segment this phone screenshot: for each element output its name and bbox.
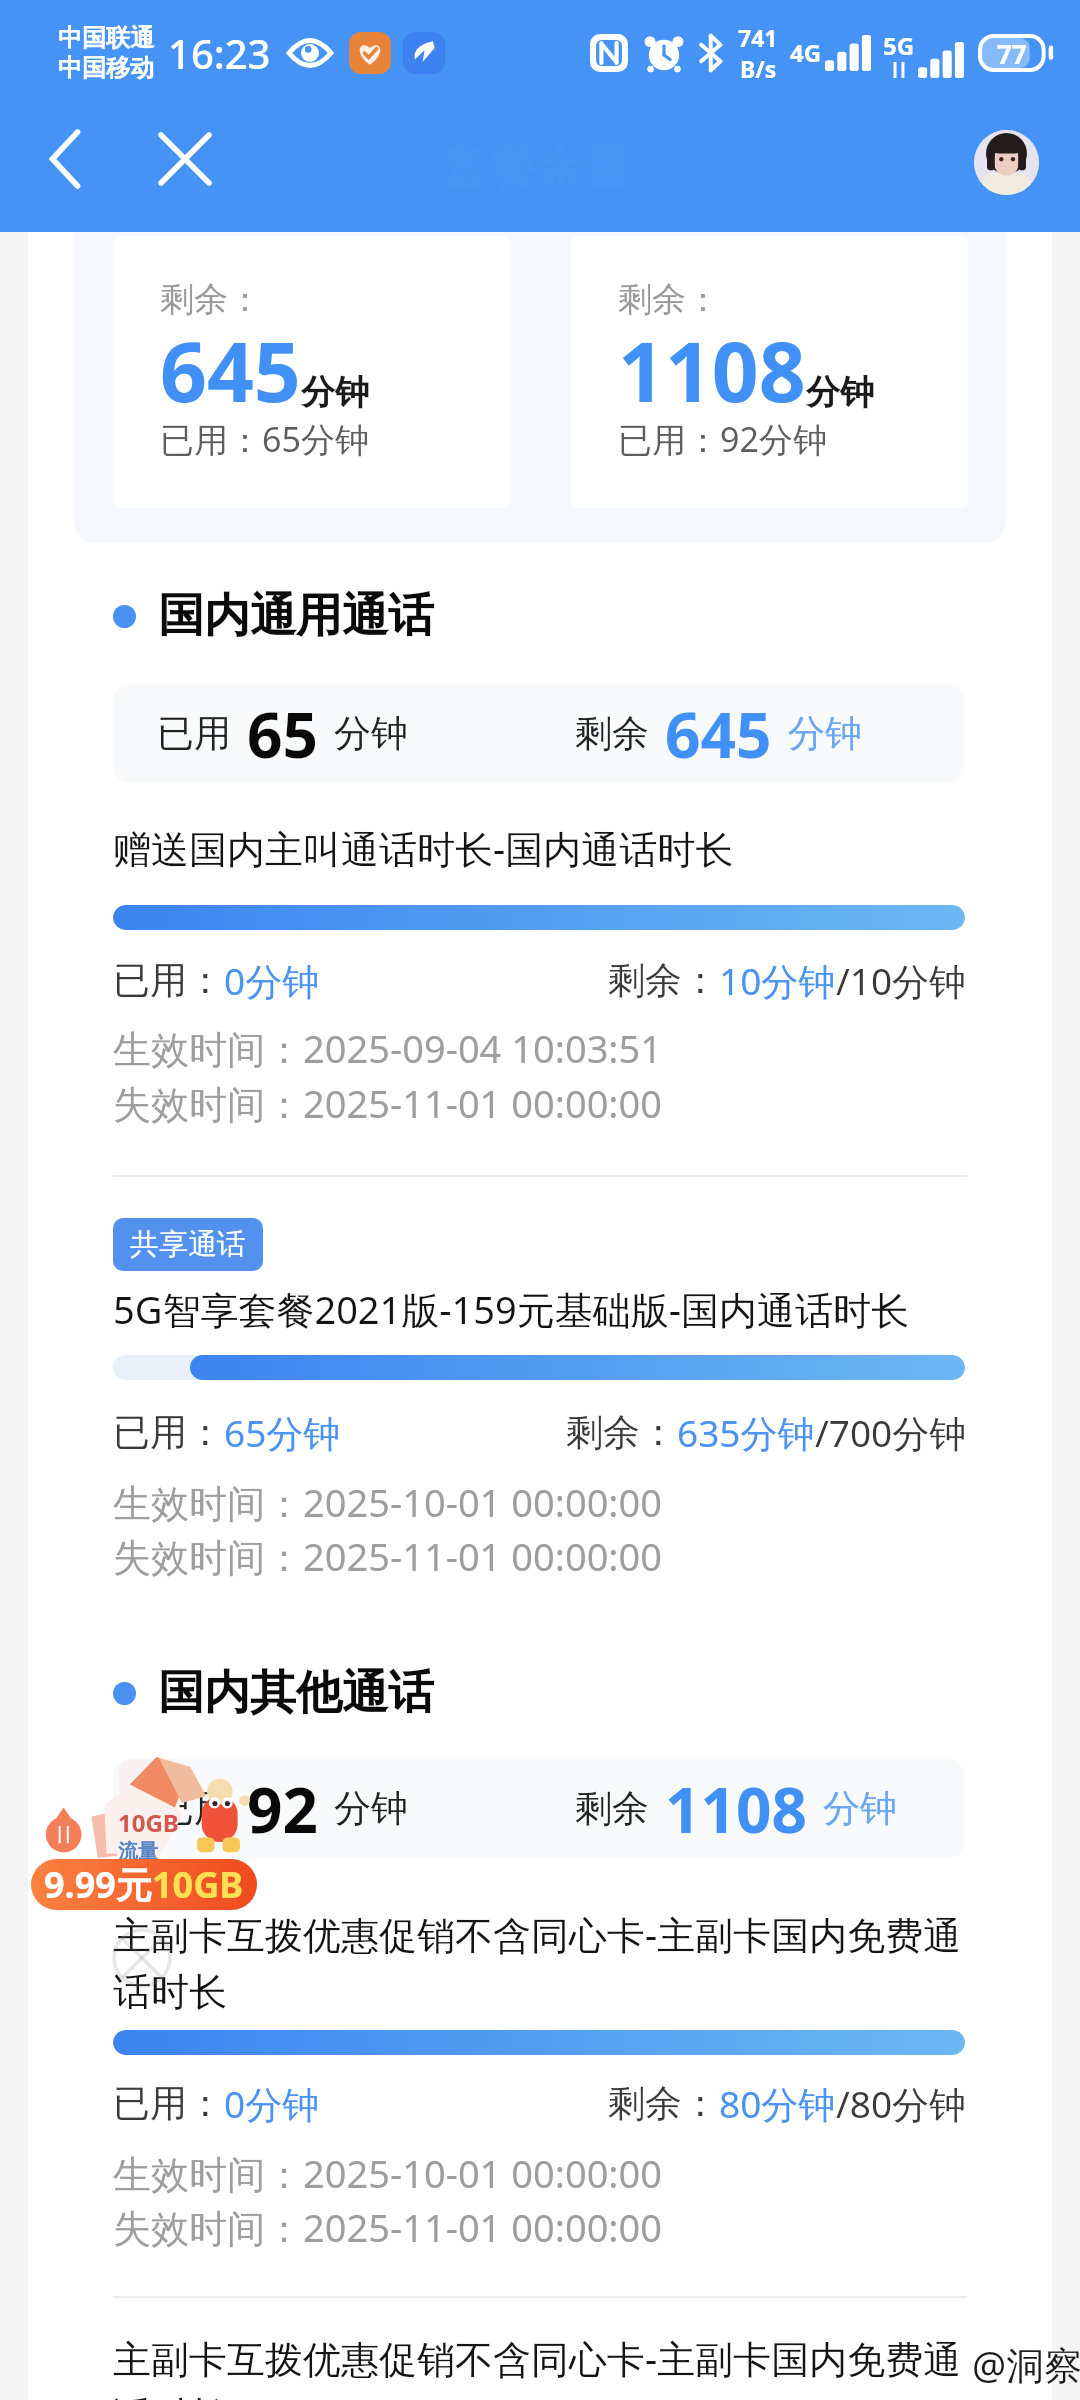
staticText: 中国联通 [58, 23, 154, 53]
staticText: 65分钟 [224, 1407, 341, 1458]
staticText: 生效时间：2025-10-01 00:00:00 [113, 2147, 663, 2199]
button[interactable]: 剩余： [113, 236, 510, 508]
button[interactable]: Profile [974, 130, 1039, 195]
staticText: 剩余 [575, 1785, 649, 1832]
staticText: 主副卡互拨优惠促销不含同心卡-主副卡国内免费通 话时长 [113, 2332, 962, 2400]
staticText: 失效时间：2025-11-01 00:00:00 [113, 1530, 663, 1582]
staticText: 失效时间：2025-11-01 00:00:00 [113, 2201, 663, 2253]
staticText: 0分钟 [224, 955, 320, 1006]
staticText: 80分钟 [719, 2078, 836, 2129]
staticText: 国内其他通话 [158, 1664, 434, 1722]
button[interactable]: Back [18, 112, 112, 206]
staticText: 5G [883, 29, 915, 62]
staticText: 10GB [118, 1806, 179, 1839]
button[interactable]: Close promotion [112, 1928, 172, 1988]
button[interactable]: 9.99元 [31, 1859, 257, 1910]
button[interactable]: 剩余： [571, 236, 968, 508]
staticText: /80分钟 [836, 2078, 967, 2129]
staticText: 741 [738, 22, 778, 53]
staticText: 剩余： [608, 2080, 719, 2127]
staticText: 分钟 [334, 1785, 408, 1832]
staticText: 分钟 [823, 1785, 897, 1832]
button[interactable]: 已用 [113, 1759, 965, 1858]
staticText: 已用： [113, 957, 224, 1004]
staticText: 分钟 [334, 710, 408, 757]
staticText: @洞察 [972, 2338, 1080, 2390]
staticText: 剩余： [566, 1409, 677, 1456]
staticText: 中国移动 [58, 53, 154, 83]
staticText: /700分钟 [815, 1407, 967, 1458]
staticText: 分钟 [806, 371, 874, 414]
staticText: 10分钟 [719, 955, 836, 1006]
staticText: 1108 [618, 314, 806, 426]
staticText: 失效时间：2025-11-01 00:00:00 [113, 1077, 663, 1129]
staticText: 5G智享套餐2021版-159元基础版-国内通话时长 [113, 1283, 910, 1335]
staticText: 645 [665, 692, 772, 776]
staticText: 已用： [113, 2080, 224, 2127]
staticText: 635分钟 [677, 1407, 815, 1458]
staticText: 剩余： [160, 278, 262, 321]
staticText: 生效时间：2025-09-04 10:03:51 [113, 1022, 663, 1074]
staticText: B/s [740, 53, 777, 84]
staticText: 0分钟 [224, 2078, 320, 2129]
staticText: 92 [247, 1767, 318, 1851]
staticText: 已用：92分钟 [618, 416, 827, 462]
button[interactable]: 已用 [113, 684, 965, 783]
staticText: 剩余 [575, 710, 649, 757]
staticText: /10分钟 [836, 955, 967, 1006]
staticText: 国内通用通话 [158, 587, 434, 645]
button[interactable]: Close [138, 112, 232, 206]
staticText: 分钟 [301, 371, 369, 414]
staticText: 10GB [152, 1860, 244, 1909]
staticText: 已用： [113, 1409, 224, 1456]
staticText: 4G [790, 36, 822, 69]
staticText: 剩余： [608, 957, 719, 1004]
staticText: 77 [997, 36, 1027, 71]
staticText: 已用：65分钟 [160, 416, 369, 462]
button[interactable]: Promotion banner [30, 1750, 262, 1865]
staticText: 赠送国内主叫通话时长-国内通话时长 [113, 822, 734, 874]
staticText: 已用 [157, 1785, 231, 1832]
staticText: 9.99元 [44, 1860, 152, 1909]
staticText: 645 [160, 314, 301, 426]
staticText: 16:23 [168, 26, 271, 80]
staticText: 剩余： [618, 278, 720, 321]
staticText: 已用 [157, 710, 231, 757]
staticText: 1108 [665, 1767, 807, 1851]
staticText: 分钟 [788, 710, 862, 757]
staticText: 共享通话 [130, 1226, 246, 1263]
staticText: 生效时间：2025-10-01 00:00:00 [113, 1476, 663, 1528]
staticText: 主副卡互拨优惠促销不含同心卡-主副卡国内免费通 话时长 [113, 1908, 962, 2016]
staticText: 65 [247, 692, 318, 776]
staticText: 流量 [118, 1839, 158, 1864]
